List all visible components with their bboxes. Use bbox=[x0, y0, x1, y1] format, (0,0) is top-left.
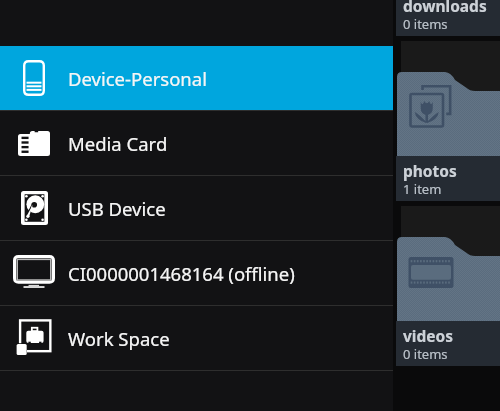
staticText: Media Card bbox=[68, 131, 168, 156]
staticText: downloads bbox=[403, 0, 487, 16]
staticText: 0 items bbox=[403, 15, 448, 33]
button[interactable]: Work space bbox=[0, 306, 393, 370]
button[interactable]: Device Personal bbox=[0, 46, 393, 110]
button[interactable]: Media card bbox=[0, 111, 393, 175]
staticText: photos bbox=[403, 160, 457, 181]
button[interactable]: downloads bbox=[396, 0, 500, 36]
staticText: 1 item bbox=[403, 180, 442, 198]
staticText: Work Space bbox=[68, 326, 170, 351]
other: USB device bbox=[21, 191, 48, 225]
button[interactable]: Computer bbox=[0, 241, 393, 305]
other: Computer bbox=[13, 255, 55, 291]
other: Work space bbox=[16, 320, 52, 356]
button[interactable]: USB device bbox=[0, 176, 393, 240]
other: Device Personal bbox=[23, 60, 45, 96]
button[interactable]: videos bbox=[396, 237, 500, 366]
staticText: videos bbox=[403, 325, 454, 346]
staticText: CI0000001468164 (offline) bbox=[68, 261, 295, 286]
staticText: Device-Personal bbox=[68, 66, 207, 91]
button[interactable]: photos bbox=[396, 72, 500, 201]
staticText: USB Device bbox=[68, 196, 166, 221]
other: Media card bbox=[18, 131, 50, 156]
staticText: 0 items bbox=[403, 345, 448, 363]
